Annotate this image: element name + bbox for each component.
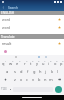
staticText: 4	[26, 59, 28, 62]
button[interactable]: w	[7, 59, 14, 67]
staticText: ?123	[1, 87, 7, 91]
button[interactable]: ?123	[0, 83, 8, 95]
button[interactable]: k	[49, 67, 55, 75]
staticText: result	[2, 41, 12, 46]
button[interactable]: Backspace	[54, 75, 64, 83]
staticText: r	[24, 61, 26, 66]
staticText: word	[2, 17, 11, 22]
button[interactable]: x	[18, 75, 24, 83]
staticText: ENGLISH	[1, 11, 15, 15]
staticText: 3	[19, 59, 21, 62]
staticText: h	[39, 69, 42, 74]
staticText: u	[42, 61, 45, 66]
staticText: 5	[32, 59, 34, 62]
button[interactable]: h	[37, 67, 43, 75]
staticText: 9	[56, 59, 58, 62]
staticText: e	[16, 61, 19, 66]
button[interactable]: Search	[55, 86, 62, 93]
staticText: f	[27, 69, 29, 74]
staticText: a	[6, 69, 9, 74]
button[interactable]	[8, 83, 13, 95]
button[interactable]: r	[21, 59, 28, 67]
button[interactable]: e	[14, 59, 21, 67]
staticText: d	[20, 69, 23, 74]
button[interactable]: l	[55, 67, 61, 75]
button[interactable]: n	[42, 75, 48, 83]
staticText: j	[45, 69, 47, 74]
staticText: t	[30, 61, 32, 66]
staticText: n	[44, 77, 47, 82]
staticText: c	[26, 77, 28, 82]
button[interactable]: v	[30, 75, 36, 83]
staticText: x	[20, 77, 23, 82]
staticText: q	[2, 61, 5, 66]
button[interactable]: c	[24, 75, 30, 83]
staticText: b	[38, 77, 41, 82]
staticText: m	[49, 77, 53, 82]
button[interactable]: g	[31, 67, 37, 75]
button[interactable]: f	[25, 67, 31, 75]
staticText: i	[48, 61, 50, 66]
staticText: Search	[8, 6, 19, 10]
staticText: y	[36, 61, 39, 66]
button[interactable]: word	[0, 23, 64, 32]
staticText: z	[14, 77, 16, 82]
button[interactable]: m	[48, 75, 54, 83]
button[interactable]: u	[40, 59, 46, 67]
staticText: 8	[50, 59, 52, 62]
button[interactable]: word	[0, 15, 64, 23]
staticText: word	[2, 25, 11, 30]
staticText: Translate	[1, 35, 15, 39]
staticText: 6	[38, 59, 40, 62]
staticText: p	[60, 61, 63, 66]
button[interactable]: result	[0, 39, 64, 48]
button[interactable]: o	[52, 59, 58, 67]
staticText: g	[33, 69, 36, 74]
button[interactable]: z	[11, 75, 18, 83]
staticText: l	[57, 69, 59, 74]
button[interactable]: q	[0, 59, 7, 67]
button[interactable]: j	[43, 67, 49, 75]
button[interactable]: y	[34, 59, 40, 67]
button[interactable]: p	[58, 59, 64, 67]
staticText: v	[32, 77, 35, 82]
button[interactable]: Back	[2, 6, 5, 9]
staticText: 0	[62, 59, 64, 62]
staticText: 7	[44, 59, 46, 62]
button[interactable]: s	[11, 67, 18, 75]
button[interactable]: d	[18, 67, 25, 75]
staticText: k	[51, 69, 54, 74]
button[interactable]: a	[4, 67, 11, 75]
staticText: 2	[12, 59, 14, 62]
staticText: o	[54, 61, 57, 66]
button[interactable]: t	[28, 59, 34, 67]
button[interactable]: b	[36, 75, 42, 83]
button[interactable]: Shift	[0, 75, 11, 83]
staticText: w	[9, 61, 13, 66]
staticText: s	[14, 69, 16, 74]
button[interactable]: i	[46, 59, 52, 67]
staticText: 1	[5, 59, 7, 62]
